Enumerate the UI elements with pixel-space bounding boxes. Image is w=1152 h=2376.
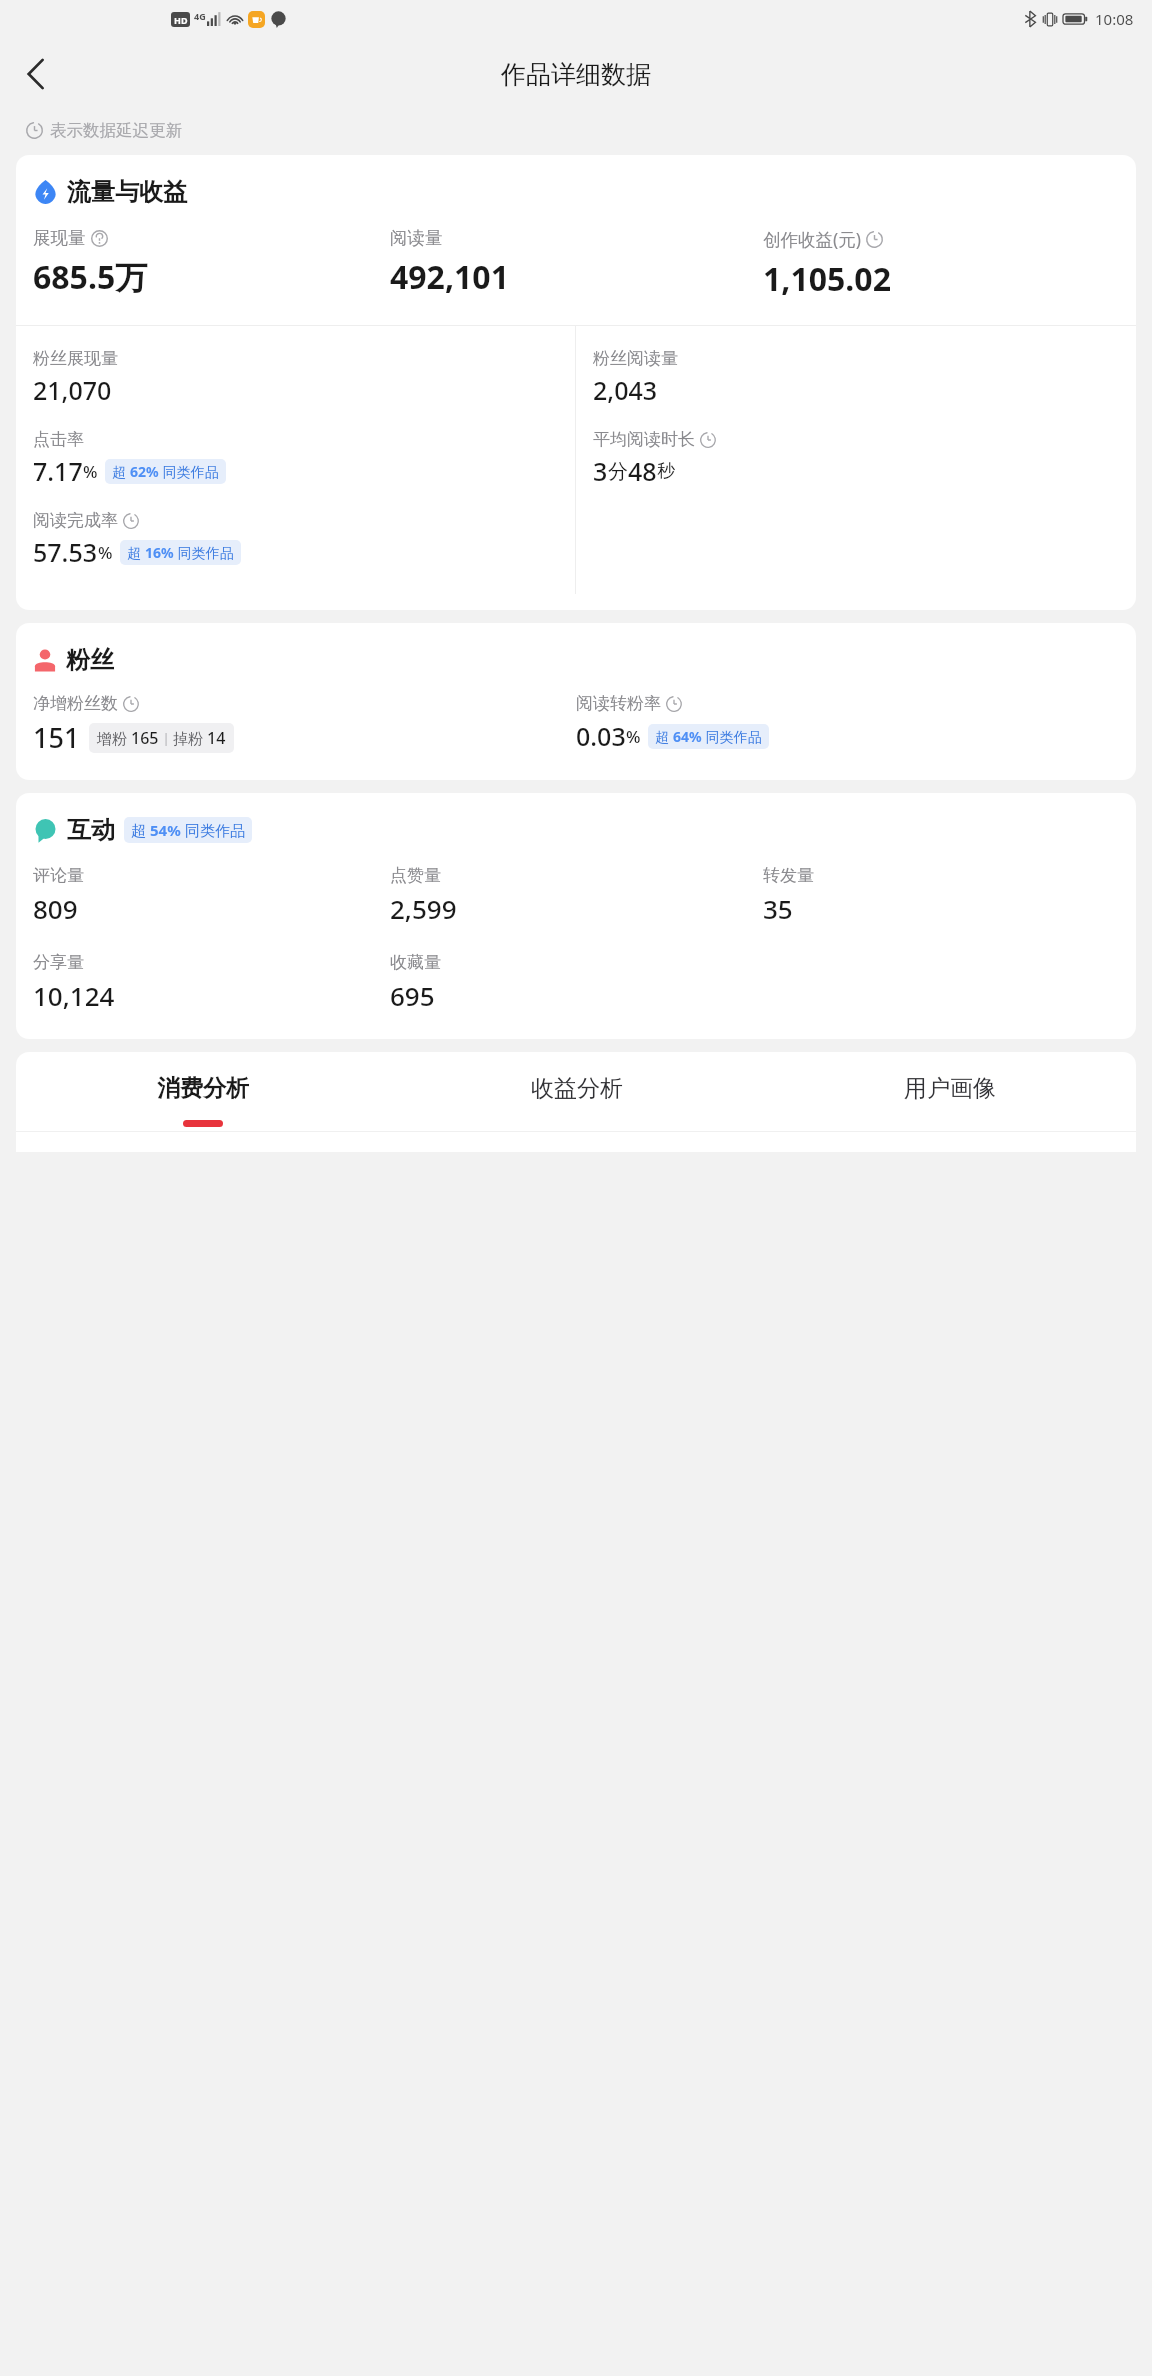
staticText: 57.53 — [33, 535, 98, 569]
staticText: 表示数据延迟更新 — [50, 120, 182, 141]
staticText: % — [83, 460, 98, 483]
staticText: 平均阅读时长 — [593, 429, 695, 450]
staticText: 消费分析 — [157, 1074, 249, 1103]
button[interactable]: 用户画像 — [763, 1074, 1136, 1127]
staticText: 阅读转粉率 — [576, 693, 661, 714]
staticText: 超 — [112, 462, 130, 481]
staticText: | — [159, 729, 173, 747]
staticText: 作品详细数据 — [501, 59, 651, 90]
staticText: 转发量 — [763, 865, 814, 886]
staticText: 阅读量 — [390, 227, 443, 249]
staticText: 分 — [608, 459, 628, 484]
staticText: 2,043 — [593, 373, 658, 407]
staticText: 1,105.02 — [763, 257, 891, 301]
staticText: 165 — [131, 727, 159, 749]
staticText: 同类作品 — [181, 820, 245, 840]
staticText: 收藏量 — [390, 952, 441, 973]
staticText: 2,599 — [390, 891, 457, 926]
staticText: 评论量 — [33, 865, 84, 886]
staticText: 35 — [763, 891, 793, 926]
staticText: 54% — [150, 820, 181, 840]
staticText: 10:08 — [1095, 9, 1134, 29]
staticText: 粉丝展现量 — [33, 348, 118, 369]
staticText: 用户画像 — [904, 1074, 996, 1103]
staticText: 超 — [655, 727, 673, 746]
staticText: 秒 — [657, 460, 675, 483]
staticText: 超 — [127, 543, 145, 562]
staticText: 4G — [194, 10, 206, 22]
staticText: 7.17 — [33, 454, 83, 488]
staticText: 互动 — [67, 815, 115, 845]
staticText: 同类作品 — [159, 462, 219, 481]
staticText: 492,101 — [390, 255, 509, 299]
staticText: 创作收益(元) — [763, 227, 861, 251]
staticText: % — [626, 725, 641, 748]
staticText: 0.03 — [576, 719, 626, 753]
button[interactable]: 收益分析 — [390, 1074, 763, 1127]
staticText: 流量与收益 — [67, 177, 187, 207]
button[interactable]: Back — [8, 47, 62, 101]
staticText: % — [98, 541, 113, 564]
staticText: 64% — [673, 727, 702, 746]
staticText: 10,124 — [33, 978, 115, 1013]
staticText: 分享量 — [33, 952, 84, 973]
staticText: 62% — [130, 462, 159, 481]
staticText: 净增粉丝数 — [33, 693, 118, 714]
staticText: HD — [174, 14, 188, 26]
staticText: 809 — [33, 891, 78, 926]
staticText: 超 — [131, 820, 150, 840]
staticText: 同类作品 — [174, 543, 234, 562]
button[interactable]: 消费分析 — [16, 1074, 390, 1127]
staticText: 点赞量 — [390, 865, 441, 886]
staticText: 695 — [390, 978, 435, 1013]
staticText: 掉粉 — [173, 728, 207, 748]
staticText: 685.5万 — [33, 255, 148, 299]
staticText: 粉丝 — [66, 645, 114, 675]
staticText: 21,070 — [33, 373, 112, 407]
staticText: 展现量 — [33, 227, 86, 249]
staticText: 16% — [145, 543, 174, 562]
staticText: 151 — [33, 719, 80, 756]
staticText: 48 — [628, 454, 657, 488]
staticText: 阅读完成率 — [33, 510, 118, 531]
staticText: 14 — [207, 727, 226, 749]
staticText: 粉丝阅读量 — [593, 348, 678, 369]
staticText: 点击率 — [33, 429, 84, 450]
staticText: 收益分析 — [531, 1074, 623, 1103]
staticText: 增粉 — [97, 728, 131, 748]
staticText: 同类作品 — [702, 727, 762, 746]
staticText: 3 — [593, 454, 608, 488]
